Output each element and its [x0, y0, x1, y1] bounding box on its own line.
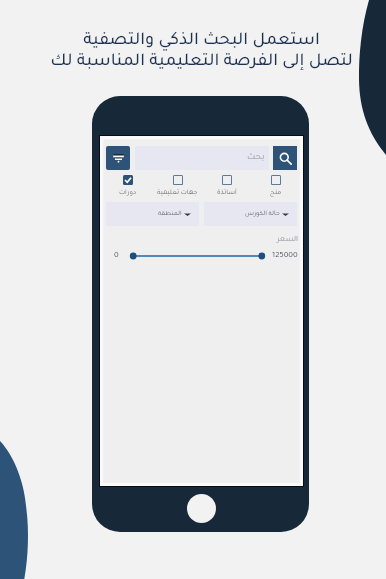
- staticText: استعمل البحث الذكي والتصفية: [83, 32, 320, 50]
- staticText: لتصل إلى الفرصة التعليمية المناسبة لك: [50, 53, 353, 71]
- button[interactable]: Search: [273, 146, 297, 170]
- button[interactable]: بحث: [135, 146, 269, 170]
- staticText: منح: [270, 189, 282, 196]
- staticText: السعر: [106, 236, 298, 244]
- button[interactable]: [130, 249, 265, 263]
- staticText: بحث: [247, 153, 265, 163]
- staticText: المنطقة: [158, 211, 182, 218]
- staticText: 0: [114, 252, 119, 260]
- staticText: حالة الكورس: [245, 211, 280, 218]
- staticText: جهات تعليمية: [157, 189, 198, 196]
- staticText: 125000: [272, 252, 298, 260]
- button[interactable]: Filter: [106, 146, 130, 170]
- button[interactable]: دورات: [103, 175, 153, 196]
- staticText: دورات: [119, 189, 137, 196]
- button[interactable]: منح: [251, 175, 300, 196]
- button[interactable]: المنطقة: [106, 202, 199, 226]
- button[interactable]: حالة الكورس: [204, 202, 297, 226]
- button[interactable]: جهات تعليمية: [153, 175, 202, 196]
- button[interactable]: أساتذة: [202, 175, 251, 196]
- staticText: أساتذة: [217, 189, 237, 196]
